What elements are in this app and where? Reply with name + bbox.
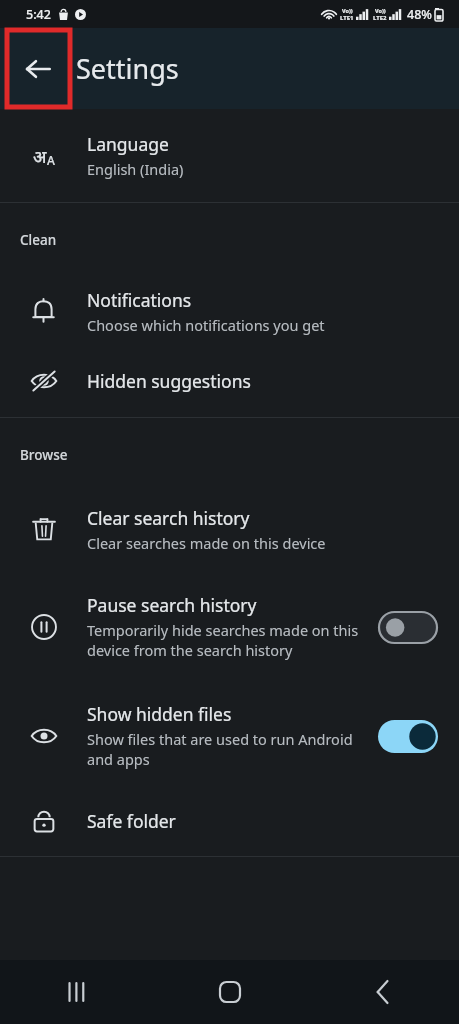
button[interactable]: Hidden suggestions bbox=[0, 347, 459, 415]
staticText: Show files that are used to run Android … bbox=[87, 729, 370, 770]
staticText: Clear searches made on this device bbox=[87, 533, 326, 553]
staticText: Clear search history bbox=[87, 506, 250, 530]
staticText: LTE2 bbox=[373, 14, 387, 22]
staticText: A bbox=[47, 152, 55, 168]
button[interactable]: Back bbox=[10, 41, 66, 97]
button[interactable]: Toggle off bbox=[378, 611, 438, 644]
staticText: Show hidden files bbox=[87, 702, 232, 726]
staticText: LTE1 bbox=[340, 14, 354, 22]
staticText: Notifications bbox=[87, 288, 192, 312]
button[interactable]: Toggle on bbox=[378, 720, 438, 753]
button[interactable]: Clear search history bbox=[0, 490, 459, 568]
staticText: 5:42 bbox=[26, 6, 51, 23]
staticText: Browse bbox=[20, 446, 68, 464]
button[interactable]: Home bbox=[153, 960, 306, 1024]
staticText: English (India) bbox=[87, 159, 184, 179]
staticText: अ bbox=[33, 145, 47, 168]
staticText: Safe folder bbox=[87, 809, 176, 833]
button[interactable]: Pause search history bbox=[0, 568, 459, 686]
staticText: Vo)) bbox=[342, 7, 353, 14]
staticText: Hidden suggestions bbox=[87, 369, 251, 393]
button[interactable]: Safe folder bbox=[0, 786, 459, 856]
staticText: Temporarily hide searches made on this d… bbox=[87, 620, 370, 661]
button[interactable]: अ bbox=[0, 109, 459, 202]
staticText: Pause search history bbox=[87, 593, 257, 617]
button[interactable]: Notifications bbox=[0, 275, 459, 347]
staticText: Choose which notifications you get bbox=[87, 315, 325, 335]
staticText: Vo)) bbox=[375, 7, 386, 14]
button[interactable]: Recent apps bbox=[0, 960, 153, 1024]
staticText: Language bbox=[87, 132, 169, 156]
staticText: Settings bbox=[76, 50, 179, 87]
button[interactable]: Back bbox=[306, 960, 459, 1024]
button[interactable]: Show hidden files bbox=[0, 686, 459, 786]
staticText: Clean bbox=[20, 231, 57, 249]
staticText: 48% bbox=[407, 6, 432, 23]
